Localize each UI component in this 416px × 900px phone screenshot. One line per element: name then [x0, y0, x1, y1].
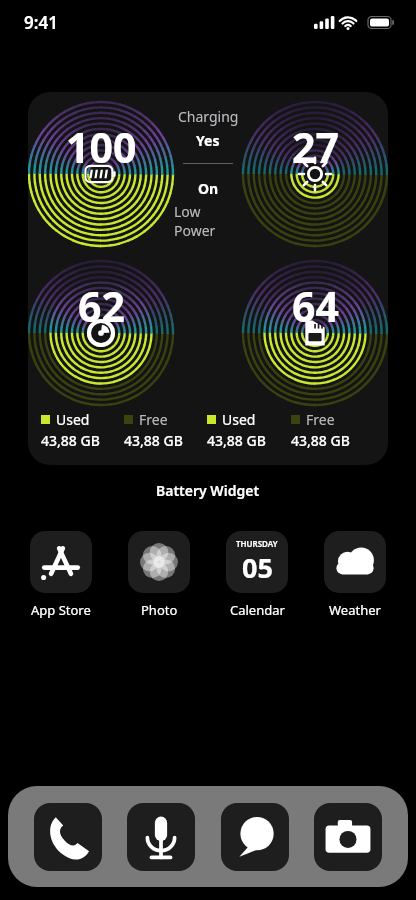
- staticText: Yes: [196, 131, 220, 150]
- button[interactable]: Camera: [314, 803, 382, 871]
- staticText: 64: [292, 278, 339, 334]
- staticText: App Store: [31, 601, 91, 619]
- button[interactable]: THURSDAY: [226, 531, 288, 619]
- staticText: Battery Widget: [156, 481, 260, 500]
- staticText: Used: [222, 410, 256, 429]
- button[interactable]: Weather: [324, 531, 386, 619]
- button[interactable]: 100: [28, 92, 388, 465]
- staticText: On: [198, 179, 219, 198]
- staticText: Used: [56, 410, 90, 429]
- staticText: Free: [139, 410, 168, 429]
- button[interactable]: Photo: [128, 531, 190, 619]
- staticText: 62: [78, 278, 125, 334]
- staticText: 9:41: [24, 11, 58, 34]
- staticText: 43,88 GB: [207, 431, 266, 450]
- staticText: THURSDAY: [236, 538, 278, 549]
- staticText: Weather: [329, 601, 381, 619]
- button[interactable]: Voice Memos: [127, 803, 195, 871]
- staticText: 27: [292, 119, 339, 175]
- staticText: 43,88 GB: [124, 431, 183, 450]
- staticText: Charging: [178, 107, 239, 126]
- staticText: Calendar: [230, 601, 285, 619]
- button[interactable]: Phone: [34, 803, 102, 871]
- button[interactable]: Messages: [221, 803, 289, 871]
- staticText: 100: [66, 119, 137, 175]
- staticText: Free: [306, 410, 335, 429]
- staticText: Low Power: [174, 202, 242, 240]
- button[interactable]: App Store: [30, 531, 92, 619]
- staticText: Photo: [141, 601, 178, 619]
- staticText: 05: [242, 549, 273, 586]
- staticText: 43,88 GB: [291, 431, 350, 450]
- staticText: 43,88 GB: [41, 431, 100, 450]
